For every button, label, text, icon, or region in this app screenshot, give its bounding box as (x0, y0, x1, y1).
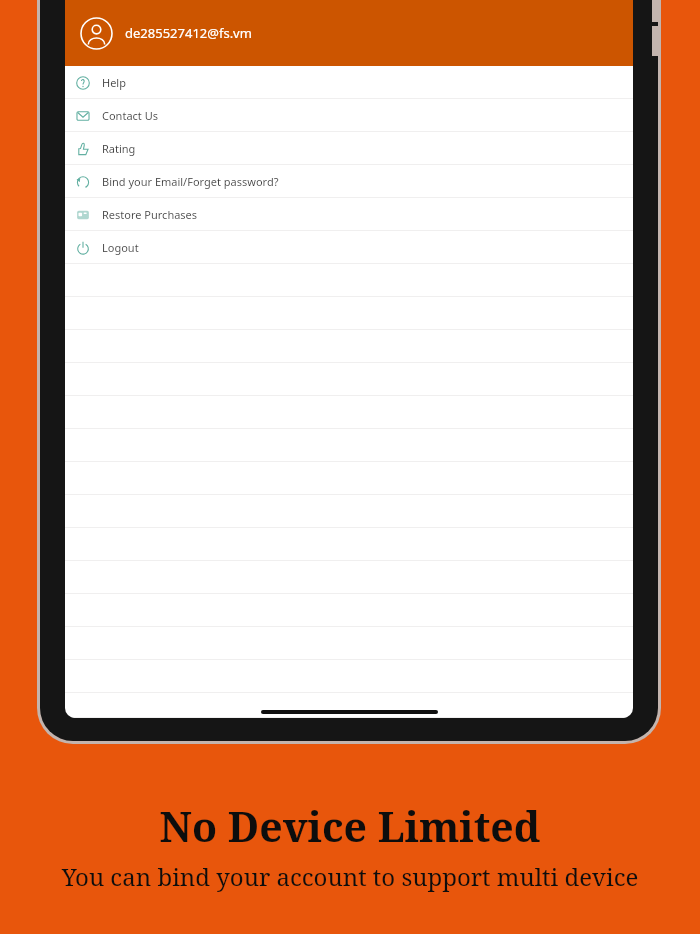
staticText: You can bind your account to support mul… (0, 860, 700, 893)
staticText: Restore Purchases (102, 207, 198, 222)
staticText: de285527412@fs.vm (125, 24, 252, 42)
button[interactable]: Rating (65, 132, 633, 165)
staticText: No Device Limited (0, 798, 700, 854)
button[interactable]: Restore Purchases (65, 198, 633, 231)
button[interactable]: Logout (65, 231, 633, 264)
button[interactable]: Help (65, 66, 633, 99)
button[interactable]: Contact Us (65, 99, 633, 132)
button[interactable]: de285527412@fs.vm (65, 0, 633, 66)
staticText: Bind your Email/Forget password? (102, 174, 279, 189)
button[interactable]: Bind your Email/Forget password? (65, 165, 633, 198)
staticText: Logout (102, 240, 139, 255)
staticText: Help (102, 75, 126, 90)
staticText: Contact Us (102, 108, 158, 123)
staticText: Rating (102, 141, 136, 156)
